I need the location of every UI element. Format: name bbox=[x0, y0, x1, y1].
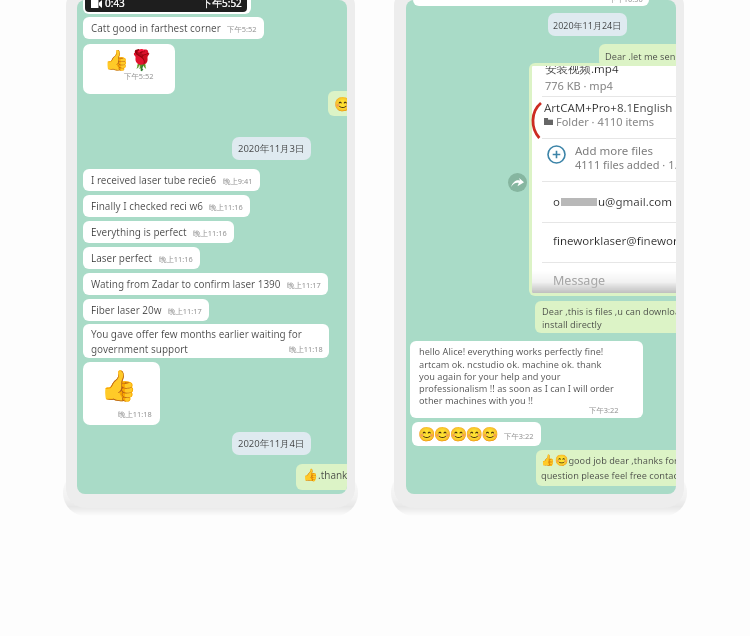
button[interactable]: 😊 bbox=[328, 91, 347, 116]
button[interactable]: Finally I checked reci w6 bbox=[83, 195, 250, 217]
staticText: 晚上11:16 bbox=[159, 254, 193, 264]
staticText: fineworklaser@finework bbox=[553, 233, 676, 249]
button[interactable]: 👍😊good job dear ,thanks for question ple… bbox=[536, 450, 676, 486]
staticText: 👍🌹 bbox=[104, 48, 154, 71]
staticText: 晚上9:41 bbox=[223, 176, 253, 186]
staticText: Folder · 4110 items bbox=[556, 114, 654, 129]
staticText: ArtCAM+Pro+8.1English bbox=[544, 100, 673, 116]
staticText: 晚上11:17 bbox=[168, 306, 202, 316]
staticText: 4111 files added · 1.8 bbox=[575, 157, 676, 172]
button[interactable]: 👍 bbox=[296, 464, 347, 490]
button[interactable]: 👍🌹 bbox=[83, 44, 175, 94]
staticText: 安装视频.mp4 bbox=[545, 66, 619, 77]
staticText: 👍 bbox=[100, 368, 138, 403]
button[interactable]: 👍 bbox=[83, 362, 160, 425]
button[interactable]: 2020年11月3日 bbox=[232, 137, 311, 160]
staticText: 😊 bbox=[334, 96, 347, 112]
staticText: 下午5:52 bbox=[227, 24, 257, 34]
button[interactable]: Dear ,this is files ,u can download inst… bbox=[535, 301, 676, 333]
button[interactable]: Forward bbox=[508, 173, 527, 192]
staticText: Message bbox=[553, 272, 606, 289]
staticText: 晚上11:17 bbox=[287, 280, 321, 290]
button[interactable]: hello Alice! everything works perfectly … bbox=[410, 341, 643, 418]
staticText: u@gmail.com bbox=[598, 194, 672, 210]
staticText: 👍 bbox=[303, 468, 318, 482]
staticText: Catt good in farthest corner bbox=[91, 21, 221, 35]
staticText: 😊😊😊😊😊 bbox=[418, 426, 498, 442]
staticText: 下午10:56 bbox=[609, 0, 643, 4]
staticText: 晚上11:16 bbox=[193, 228, 227, 238]
button[interactable]: 安装视频.mp4 bbox=[529, 63, 676, 296]
button[interactable]: Everything is perfect bbox=[83, 221, 234, 243]
staticText: 下午3:22 bbox=[589, 405, 619, 415]
staticText: 2020年11月4日 bbox=[238, 437, 305, 450]
staticText: You gave offer few months earlier waitin… bbox=[91, 327, 323, 356]
staticText: Wating from Zadar to confirm laser 1390 bbox=[91, 277, 281, 291]
staticText: o bbox=[553, 194, 560, 210]
button[interactable]: Wating from Zadar to confirm laser 1390 bbox=[83, 273, 328, 295]
staticText: Finally I checked reci w6 bbox=[91, 199, 203, 213]
button[interactable]: 2020年11月4日 bbox=[232, 432, 311, 455]
button[interactable]: 😊😊😊😊😊 bbox=[412, 422, 541, 446]
staticText: 👍😊good job dear ,thanks for question ple… bbox=[541, 454, 676, 481]
staticText: 晚上11:18 bbox=[118, 409, 152, 419]
staticText: Add more files bbox=[575, 143, 654, 159]
staticText: Laser perfect bbox=[91, 251, 153, 265]
button[interactable]: 2020年11月24日 bbox=[548, 13, 627, 36]
staticText: 晚上11:18 bbox=[289, 344, 323, 354]
staticText: .thank bbox=[318, 468, 347, 482]
staticText: Everything is perfect bbox=[91, 225, 187, 239]
button[interactable]: Laser perfect bbox=[83, 247, 200, 269]
button[interactable]: I received laser tube recie6 bbox=[83, 169, 260, 191]
staticText: 0:43 bbox=[105, 0, 125, 10]
button[interactable]: 0:43 bbox=[85, 0, 247, 12]
staticText: 776 KB · mp4 bbox=[545, 78, 613, 93]
button[interactable]: Dear .let me sen bbox=[599, 44, 676, 67]
staticText: Dear ,this is files ,u can download inst… bbox=[542, 305, 676, 331]
staticText: 晚上11:16 bbox=[209, 202, 243, 212]
staticText: 下午3:22 bbox=[504, 431, 534, 441]
staticText: hello Alice! everything works perfectly … bbox=[419, 345, 619, 406]
staticText: 2020年11月3日 bbox=[238, 142, 305, 155]
staticText: Fiber laser 20w bbox=[91, 303, 162, 317]
button[interactable]: Catt good in farthest corner bbox=[83, 17, 264, 39]
staticText: 下午5:52 bbox=[124, 71, 154, 81]
staticText: 2020年11月24日 bbox=[553, 19, 622, 31]
staticText: Dear .let me sen bbox=[605, 50, 676, 63]
button[interactable]: You gave offer few months earlier waitin… bbox=[83, 324, 329, 358]
staticText: I received laser tube recie6 bbox=[91, 173, 217, 187]
staticText: 下午5:52 bbox=[202, 0, 242, 10]
button[interactable]: Fiber laser 20w bbox=[83, 299, 209, 321]
